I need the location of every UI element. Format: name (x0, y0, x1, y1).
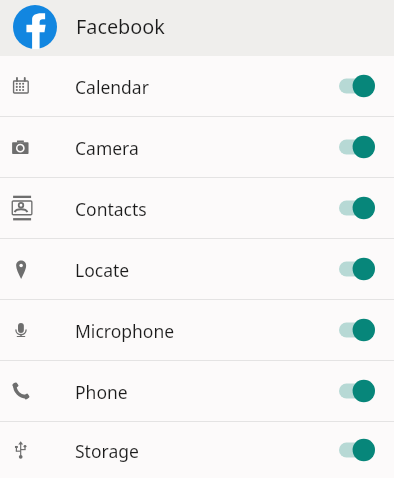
button[interactable]: Storage (0, 422, 394, 478)
button[interactable]: Toggle permission (333, 373, 381, 409)
button[interactable]: Toggle permission (333, 190, 381, 226)
staticText: Storage (75, 439, 139, 463)
button[interactable]: Facebook (0, 0, 394, 56)
button[interactable]: Toggle permission (333, 68, 381, 104)
button[interactable]: Toggle permission (333, 251, 381, 287)
staticText: Calendar (75, 75, 149, 99)
button[interactable]: Toggle permission (333, 129, 381, 165)
staticText: Camera (75, 136, 139, 160)
button[interactable]: Microphone (0, 300, 394, 360)
button[interactable]: Phone (0, 361, 394, 421)
button[interactable]: Toggle permission (333, 312, 381, 348)
staticText: Contacts (75, 197, 147, 221)
button[interactable]: Contacts (0, 178, 394, 238)
button[interactable]: Toggle permission (333, 432, 381, 468)
staticText: Microphone (75, 319, 175, 343)
button[interactable]: Locate (0, 239, 394, 299)
staticText: Facebook (76, 13, 165, 40)
button[interactable]: Calendar (0, 56, 394, 116)
staticText: Phone (75, 380, 128, 404)
button[interactable]: Camera (0, 117, 394, 177)
staticText: Locate (75, 258, 130, 282)
